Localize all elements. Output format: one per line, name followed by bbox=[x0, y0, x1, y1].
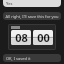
staticText: 00 bbox=[37, 30, 50, 45]
staticText: Yes bbox=[6, 1, 13, 6]
button[interactable]: OK, I saved it bbox=[3, 54, 61, 62]
staticText: OK, I saved it bbox=[6, 56, 31, 61]
button[interactable]: All right, I'll save this for you bbox=[3, 12, 61, 20]
staticText: 08 bbox=[15, 30, 28, 45]
button[interactable]: Alarm 08:00 bbox=[8, 24, 56, 50]
button[interactable]: Yes bbox=[3, 0, 61, 7]
staticText: All right, I'll save this for you bbox=[5, 14, 59, 19]
